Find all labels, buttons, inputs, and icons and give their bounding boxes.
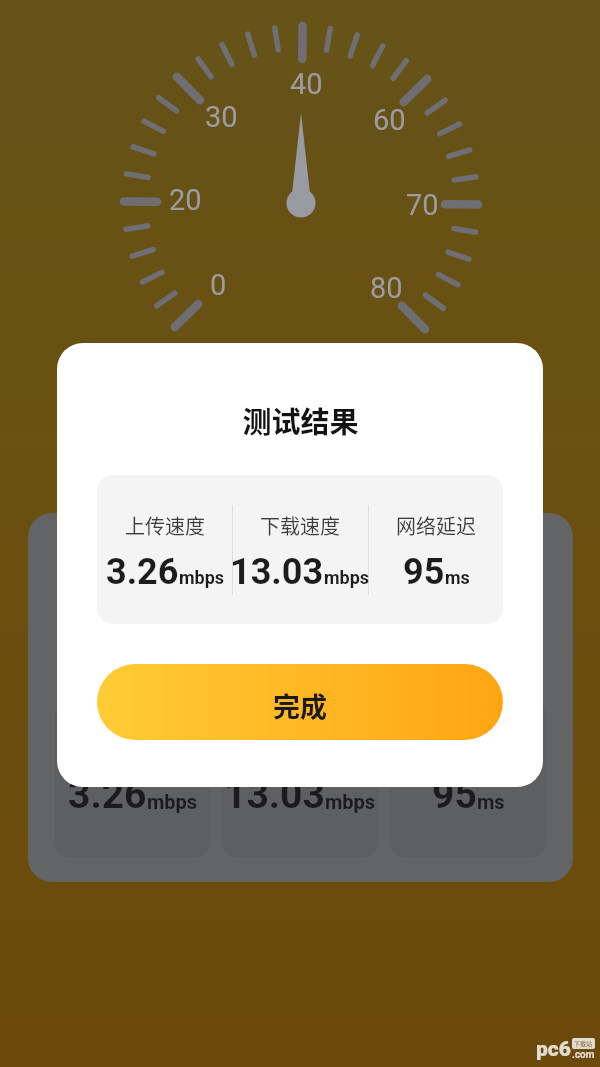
staticText: 80 (370, 271, 403, 305)
staticText: mbps (179, 567, 225, 588)
staticText: 13.03 (230, 551, 324, 593)
staticText: 0 (210, 268, 227, 302)
staticText: 60 (373, 103, 406, 137)
staticText: 30 (205, 100, 238, 134)
staticText: 下载站 (574, 1039, 593, 1048)
staticText: 40 (290, 67, 323, 101)
staticText: mbps (324, 567, 370, 588)
staticText: 3.26 (68, 772, 147, 818)
staticText: mbps (147, 790, 198, 813)
button[interactable]: 完成 (97, 664, 503, 740)
other: pc6.com watermark (536, 1037, 594, 1062)
staticText: 13.03 (224, 772, 325, 818)
staticText: 网络延迟 (396, 511, 476, 540)
staticText: .com (572, 1049, 595, 1061)
staticText: mbps (325, 790, 376, 813)
staticText: 95 (403, 551, 445, 593)
staticText: pc6 (536, 1037, 571, 1062)
staticText: 95 (432, 772, 477, 818)
staticText: ms (445, 567, 470, 588)
staticText: 20 (169, 183, 202, 217)
staticText: 上传速度 (125, 511, 205, 540)
staticText: 3.26 (106, 551, 179, 593)
staticText: 测试结果 (242, 399, 359, 441)
staticText: 70 (406, 188, 439, 222)
staticText: 下载速度 (260, 511, 340, 540)
staticText: 完成 (273, 686, 327, 725)
staticText: ms (477, 790, 505, 813)
